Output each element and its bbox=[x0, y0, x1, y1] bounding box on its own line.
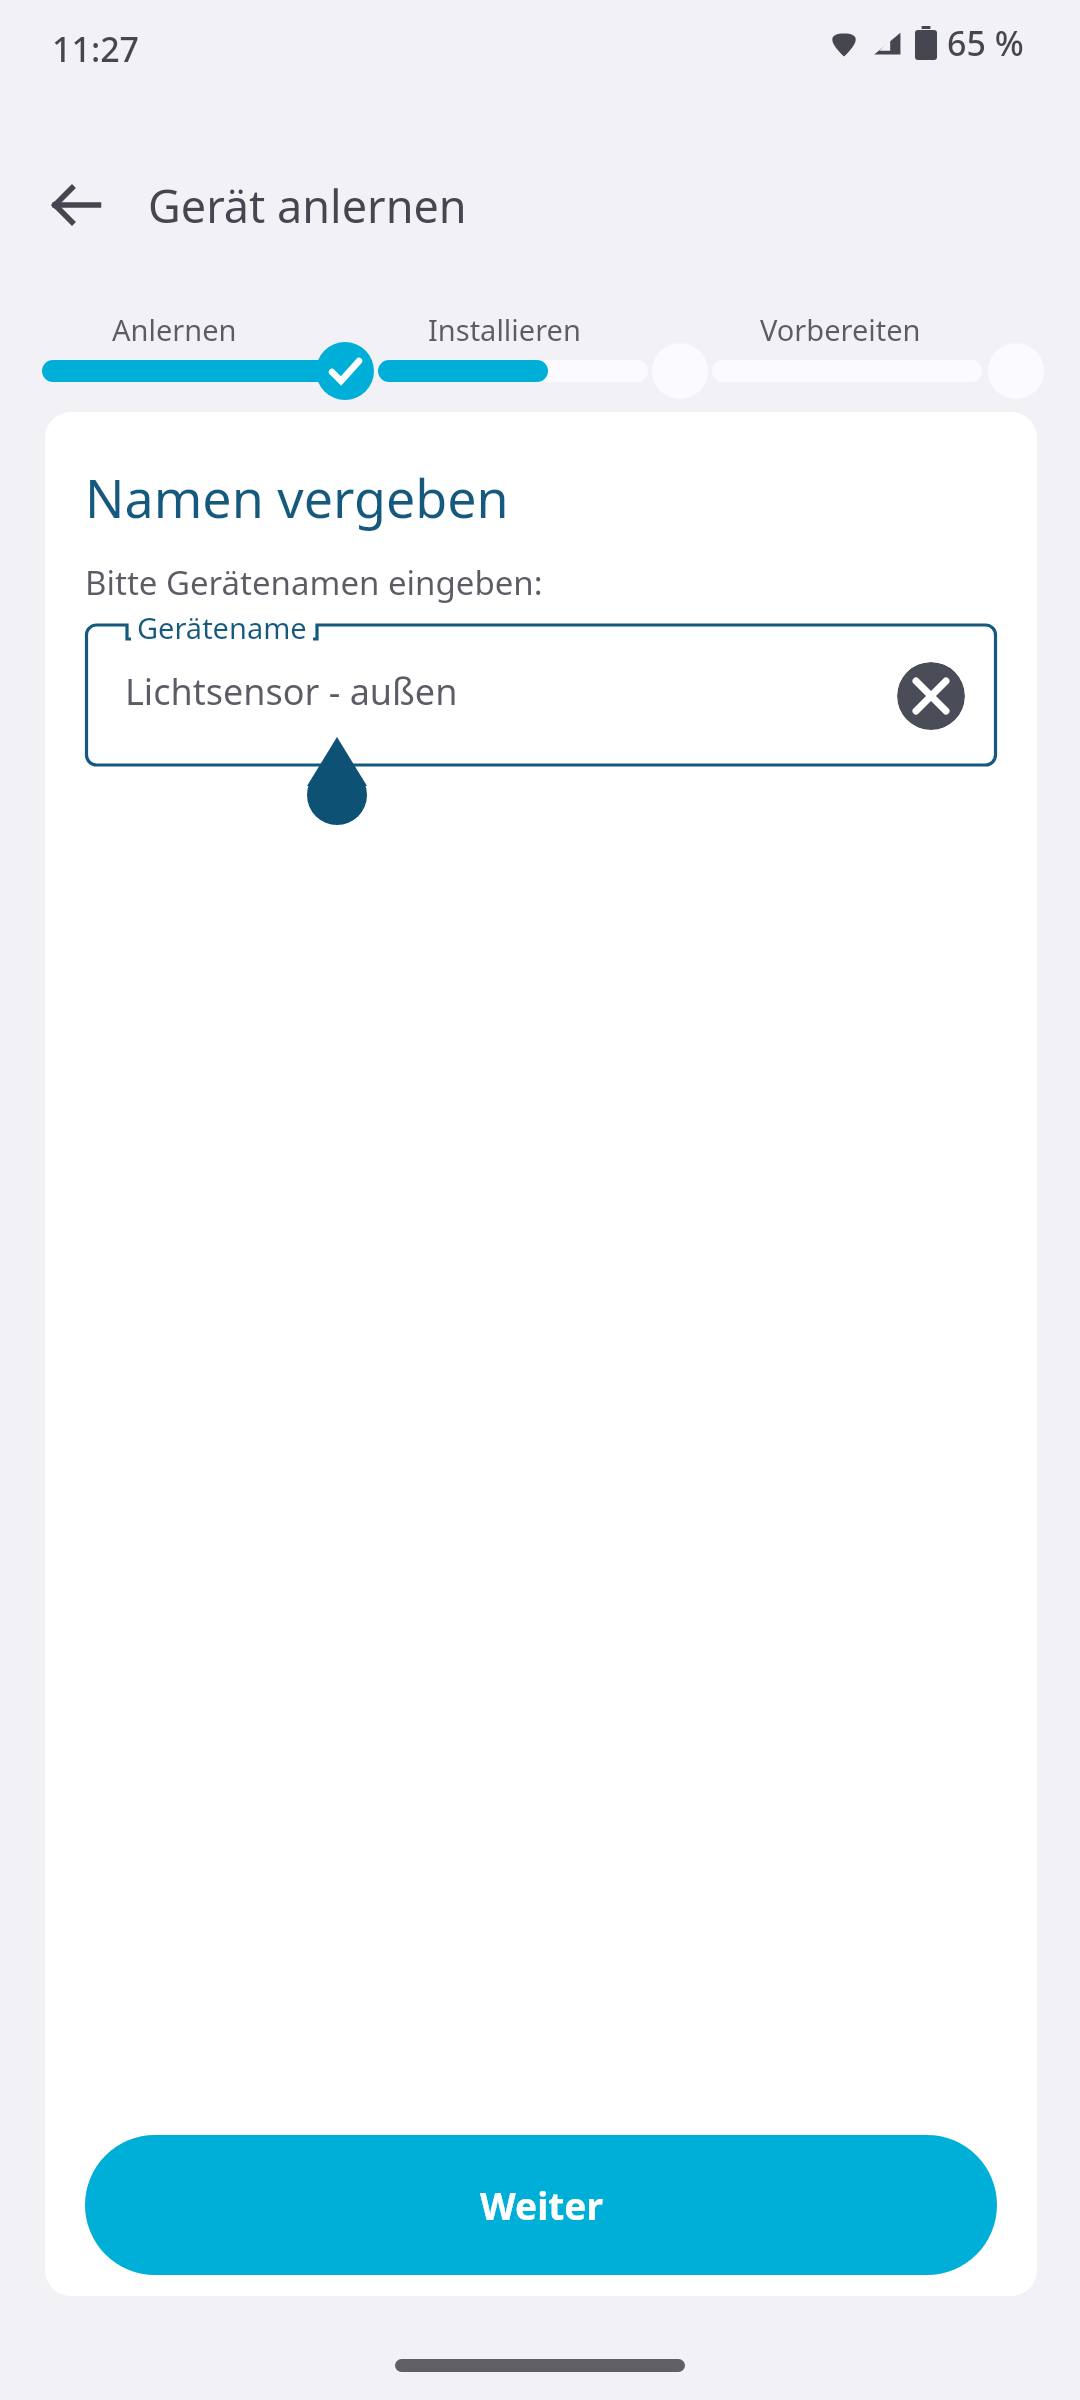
staticText: Namen vergeben bbox=[85, 462, 509, 533]
button[interactable]: Zurück bbox=[34, 163, 118, 247]
staticText: Gerätename bbox=[137, 608, 307, 647]
staticText: Installieren bbox=[428, 310, 581, 349]
staticText: Lichtsensor - außen bbox=[125, 667, 458, 716]
staticText: 11:27 bbox=[52, 26, 140, 72]
staticText: Weiter bbox=[480, 2180, 603, 2230]
staticText: Anlernen bbox=[112, 310, 237, 349]
button[interactable]: Eingabe löschen bbox=[897, 662, 965, 730]
staticText: Bitte Gerätenamen eingeben: bbox=[85, 560, 543, 605]
staticText: Vorbereiten bbox=[760, 310, 921, 349]
staticText: 65 % bbox=[947, 20, 1024, 66]
button[interactable]: Weiter bbox=[85, 2135, 997, 2275]
staticText: Gerät anlernen bbox=[148, 175, 467, 236]
